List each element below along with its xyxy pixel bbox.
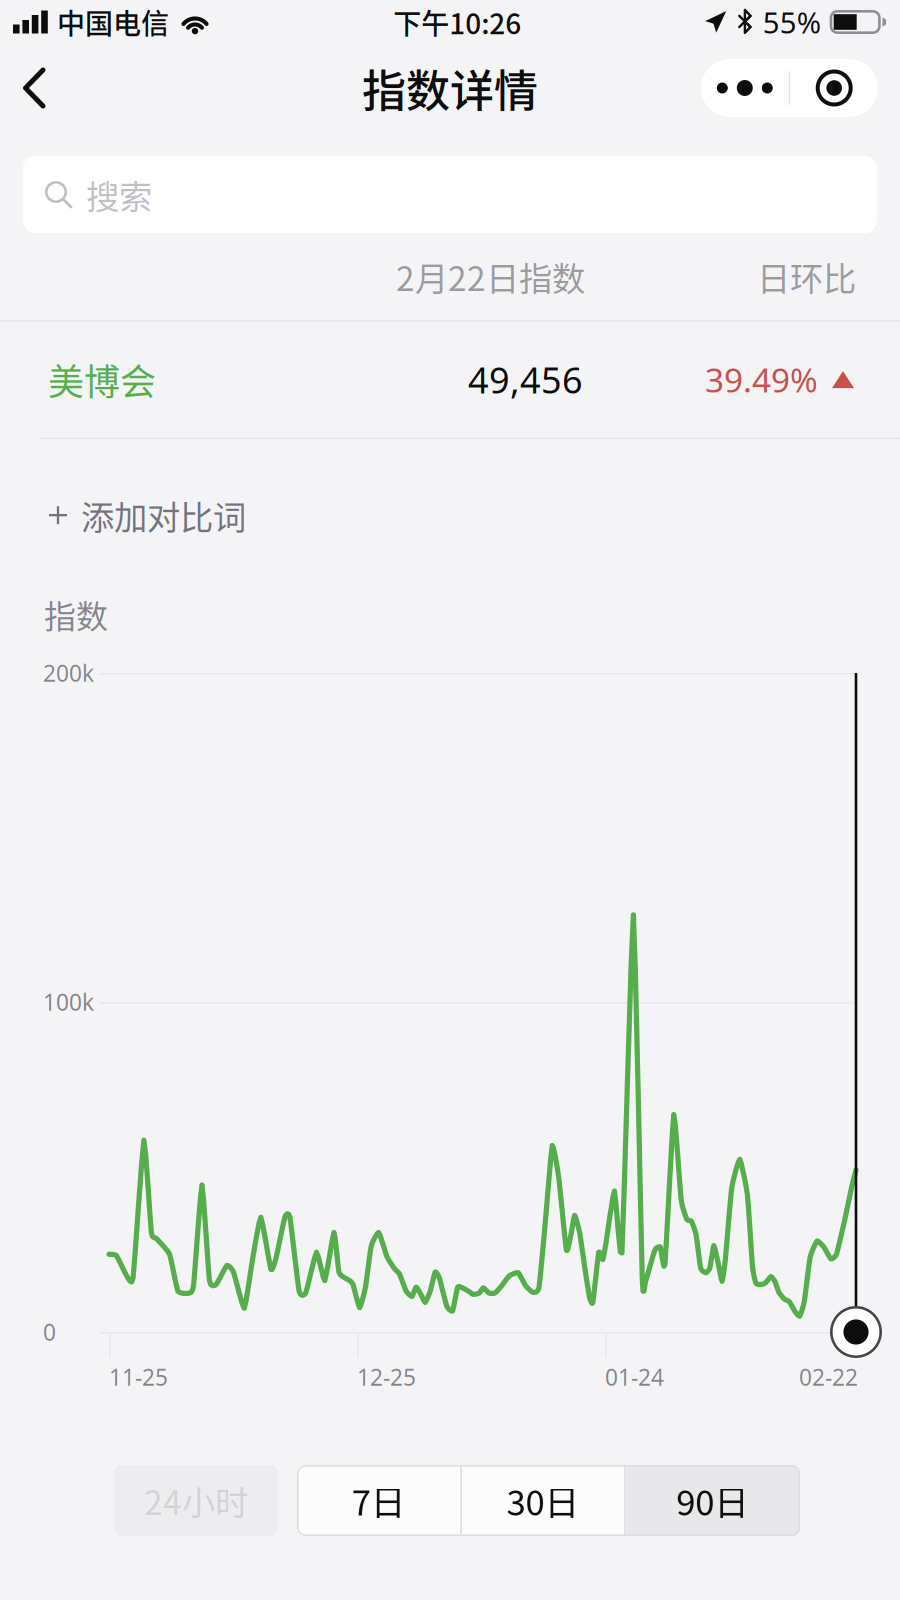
staticText: 7日 [352, 1475, 406, 1526]
button[interactable]: Close [790, 59, 878, 117]
staticText: 指数详情 [362, 56, 538, 120]
staticText: 90日 [676, 1475, 749, 1526]
staticText: 12-25 [357, 1362, 416, 1392]
staticText: 39.49% [705, 357, 818, 402]
staticText: 49,456 [468, 356, 583, 403]
staticText: 01-24 [605, 1362, 664, 1392]
staticText: 添加对比词 [81, 491, 246, 539]
staticText: 中国电信 [57, 2, 169, 42]
button[interactable]: 搜索 [23, 156, 877, 233]
staticText: 美博会 [48, 353, 156, 406]
staticText: 指数 [44, 591, 108, 637]
button[interactable]: More [701, 59, 789, 117]
button[interactable]: 90日 [626, 1465, 800, 1536]
staticText: 11-25 [109, 1362, 168, 1392]
staticText: 55% [763, 2, 821, 41]
button[interactable]: 添加对比词 [0, 439, 900, 591]
staticText: 搜索 [86, 170, 152, 219]
staticText: 02-22 [799, 1362, 858, 1392]
button[interactable]: 24小时 [114, 1465, 278, 1536]
staticText: 24小时 [144, 1476, 248, 1525]
button[interactable]: Back [0, 51, 73, 124]
button[interactable]: 7日 [297, 1465, 460, 1536]
staticText: 0 [43, 1317, 56, 1347]
staticText: 下午10:26 [393, 2, 521, 42]
staticText: 100k [43, 987, 94, 1017]
staticText: 200k [43, 658, 94, 688]
staticText: 30日 [506, 1475, 579, 1526]
staticText: 2月22日指数 [396, 252, 585, 301]
button[interactable]: 30日 [462, 1465, 624, 1536]
staticText: 日环比 [757, 252, 856, 301]
